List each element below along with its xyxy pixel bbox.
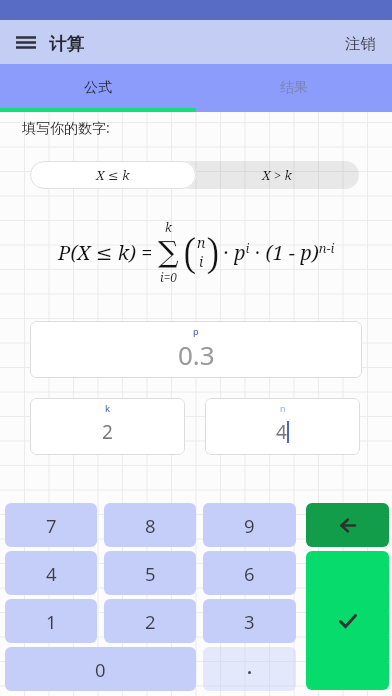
staticText: · pi · (1 − p)n−i (223, 239, 335, 266)
staticText: p (193, 325, 199, 337)
staticText: 9 (244, 513, 255, 538)
staticText: 7 (46, 513, 57, 538)
staticText: 填写你的数字: (22, 118, 110, 137)
button[interactable] (0, 20, 49, 64)
button[interactable]: 7 (5, 503, 97, 547)
staticText: n (197, 233, 206, 252)
button[interactable]: n (205, 398, 360, 455)
button[interactable]: 4 (5, 551, 97, 595)
staticText: 2 (145, 609, 156, 634)
staticText: 结果 (280, 79, 308, 97)
staticText: 计算 (49, 33, 84, 55)
staticText: X > k (262, 166, 293, 184)
button[interactable]: 0 (5, 647, 196, 691)
button[interactable]: 5 (104, 551, 196, 595)
staticText: 3 (244, 609, 255, 634)
button[interactable]: 结果 (196, 64, 392, 112)
staticText: X ≤ k (96, 166, 130, 184)
staticText: ) (206, 224, 220, 281)
button[interactable]: 3 (203, 599, 296, 643)
staticText: n (280, 402, 286, 414)
staticText: 0 (95, 657, 106, 682)
button[interactable]: X ≤ k (30, 161, 196, 189)
staticText: 0.3 (178, 337, 215, 372)
staticText: i (199, 252, 204, 271)
staticText: k (105, 402, 111, 414)
button[interactable]: k (30, 398, 185, 455)
staticText: i=0 (160, 269, 178, 285)
button[interactable] (203, 647, 296, 691)
staticText: 4 (46, 561, 57, 586)
staticText: 5 (145, 561, 156, 586)
staticText: k (165, 219, 172, 235)
button[interactable]: 注销 (329, 20, 392, 64)
staticText: 1 (46, 609, 57, 634)
button[interactable]: 6 (203, 551, 296, 595)
staticText: 8 (145, 513, 156, 538)
staticText: 2 (102, 419, 113, 445)
button[interactable]: p (30, 321, 362, 378)
staticText: ∑ (158, 235, 179, 269)
button[interactable]: X > k (196, 161, 359, 189)
staticText: ( (183, 224, 197, 281)
staticText: 公式 (84, 79, 112, 97)
staticText: P(X ≤ k) = (58, 239, 158, 266)
button[interactable]: 2 (104, 599, 196, 643)
staticText: 6 (244, 561, 255, 586)
button[interactable]: 9 (203, 503, 296, 547)
staticText: 注销 (345, 34, 376, 54)
button[interactable]: 公式 (0, 64, 196, 112)
button[interactable] (306, 551, 389, 690)
button[interactable]: 8 (104, 503, 196, 547)
button[interactable]: 1 (5, 599, 97, 643)
staticText: 4 (276, 419, 287, 445)
button[interactable] (306, 503, 389, 547)
